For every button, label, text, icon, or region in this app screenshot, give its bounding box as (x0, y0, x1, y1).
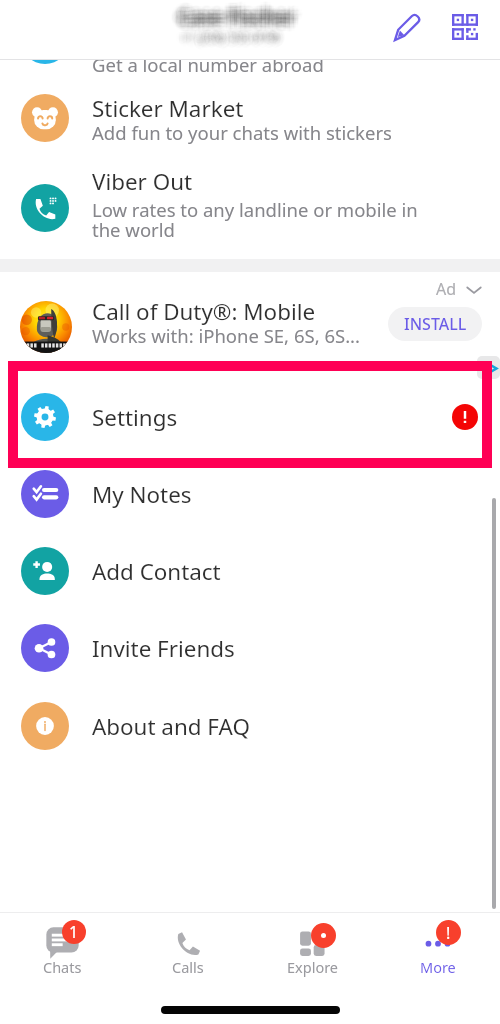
staticText: Case Fischer (183, 3, 301, 29)
staticText: +1 (206) 555 0199 (176, 30, 275, 46)
staticText: +1 (206) 555 0199 (179, 31, 278, 47)
staticText: Case Fischer (174, 8, 292, 34)
staticText: Case Fischer (182, 9, 300, 35)
staticText: Viber Local Number (92, 25, 301, 56)
staticText: +1 (206) 555 0199 (184, 29, 283, 45)
button[interactable] (0, 80, 500, 157)
staticText: Case Fischer (185, 3, 303, 29)
staticText: Case Fischer (173, 4, 291, 30)
staticText: +1 (206) 555 0199 (184, 27, 283, 43)
staticText: +1 (206) 555 0199 (182, 24, 281, 40)
staticText: Case Fischer (171, 8, 289, 34)
staticText: +1 (206) 555 0199 (186, 30, 285, 46)
button[interactable] (0, 379, 500, 456)
staticText: +1 (206) 555 0199 (178, 24, 277, 40)
staticText: +1 (206) 555 0199 (183, 31, 282, 47)
staticText: +1 (206) 555 0199 (180, 32, 279, 48)
staticText: Case Fischer (183, 7, 301, 33)
staticText: +1 (206) 555 0199 (180, 34, 279, 50)
button[interactable] (0, 533, 500, 610)
button[interactable] (0, 285, 500, 357)
button[interactable]: Explore (250, 913, 375, 1024)
button[interactable]: INSTALL (388, 307, 482, 341)
staticText: +1 (206) 555 0199 (182, 35, 281, 51)
staticText: +1 (206) 555 0199 (178, 26, 277, 42)
staticText: Case Fischer (181, 9, 299, 35)
button[interactable] (0, 610, 500, 687)
staticText: Case Fischer (175, 9, 293, 35)
staticText: Case Fischer (181, 0, 299, 23)
staticText: +1 (206) 555 0199 (185, 31, 284, 47)
staticText: +1 (206) 555 0199 (180, 35, 279, 51)
staticText: Add Contact (92, 556, 221, 587)
staticText: Case Fischer (185, 4, 303, 30)
button[interactable] (0, 688, 500, 765)
staticText: Case Fischer (175, 0, 293, 25)
staticText: Case Fischer (178, 3, 296, 29)
staticText: +1 (206) 555 0199 (185, 28, 284, 44)
staticText: +1 (206) 555 0199 (183, 25, 282, 41)
staticText: Add fun to your chats with stickers (92, 120, 392, 145)
staticText: +1 (206) 555 0199 (184, 25, 283, 41)
staticText: Case Fischer (177, 1, 295, 27)
staticText: Case Fischer (183, 0, 301, 26)
staticText: Case Fischer (178, 5, 296, 31)
staticText: Chats (43, 957, 82, 977)
staticText: Case Fischer (177, 7, 295, 33)
button[interactable]: ! (375, 913, 500, 1024)
staticText: Case Fischer (185, 5, 303, 31)
staticText: +1 (206) 555 0199 (180, 27, 279, 43)
button[interactable]: Calls (125, 913, 250, 1024)
staticText: +1 (206) 555 0199 (176, 32, 275, 48)
staticText: Case Fischer (185, 7, 303, 33)
staticText: Case Fischer (179, 12, 297, 38)
button[interactable]: 1 (0, 913, 125, 1024)
staticText: Case Fischer (171, 7, 289, 33)
staticText: Case Fischer (181, 4, 299, 30)
staticText: +1 (206) 555 0199 (184, 28, 283, 44)
staticText: +1 (206) 555 0199 (183, 27, 282, 43)
staticText: Case Fischer (179, 7, 297, 33)
staticText: Case Fischer (178, 11, 296, 37)
staticText: Case Fischer (182, 0, 300, 26)
staticText: +1 (206) 555 0199 (181, 33, 280, 49)
staticText: Case Fischer (179, 0, 297, 23)
staticText: Case Fischer (173, 0, 291, 26)
staticText: +1 (206) 555 0199 (181, 25, 280, 41)
staticText: +1 (206) 555 0199 (182, 34, 281, 50)
staticText: +1 (206) 555 0199 (187, 28, 286, 44)
staticText: Case Fischer (174, 0, 292, 23)
staticText: +1 (206) 555 0199 (177, 25, 276, 41)
staticText: +1 (206) 555 0199 (177, 26, 276, 42)
staticText: Case Fischer (177, 11, 295, 37)
staticText: +1 (206) 555 0199 (177, 27, 276, 43)
staticText: +1 (206) 555 0199 (179, 34, 278, 50)
staticText: Case Fischer (183, 9, 301, 35)
button[interactable]: Ad (436, 278, 482, 300)
staticText: Low rates to any landline or mobile in t… (92, 197, 428, 243)
staticText: My Notes (92, 479, 192, 510)
staticText: Case Fischer (181, 5, 299, 31)
staticText: +1 (206) 555 0199 (186, 27, 285, 43)
staticText: Case Fischer (177, 9, 295, 35)
staticText: Case Fischer (174, 0, 292, 26)
staticText: Case Fischer (185, 0, 303, 26)
staticText: +1 (206) 555 0199 (179, 26, 278, 42)
staticText: +1 (206) 555 0199 (184, 30, 283, 46)
button[interactable]: Edit profile (385, 5, 429, 49)
staticText: Case Fischer (181, 3, 299, 29)
staticText: +1 (206) 555 0199 (182, 28, 281, 44)
staticText: Case Fischer (178, 0, 296, 26)
button[interactable] (0, 170, 500, 247)
staticText: 1 (69, 921, 79, 943)
staticText: Case Fischer (173, 5, 291, 31)
staticText: Case Fischer (186, 5, 304, 31)
button[interactable] (0, 456, 500, 533)
staticText: Case Fischer (170, 5, 288, 31)
staticText: +1 (206) 555 0199 (178, 25, 277, 41)
button[interactable]: Scan QR code (443, 5, 487, 49)
staticText: Case Fischer (178, 7, 296, 33)
staticText: +1 (206) 555 0199 (181, 27, 280, 43)
staticText: +1 (206) 555 0199 (184, 33, 283, 49)
staticText: Case Fischer (178, 0, 296, 23)
